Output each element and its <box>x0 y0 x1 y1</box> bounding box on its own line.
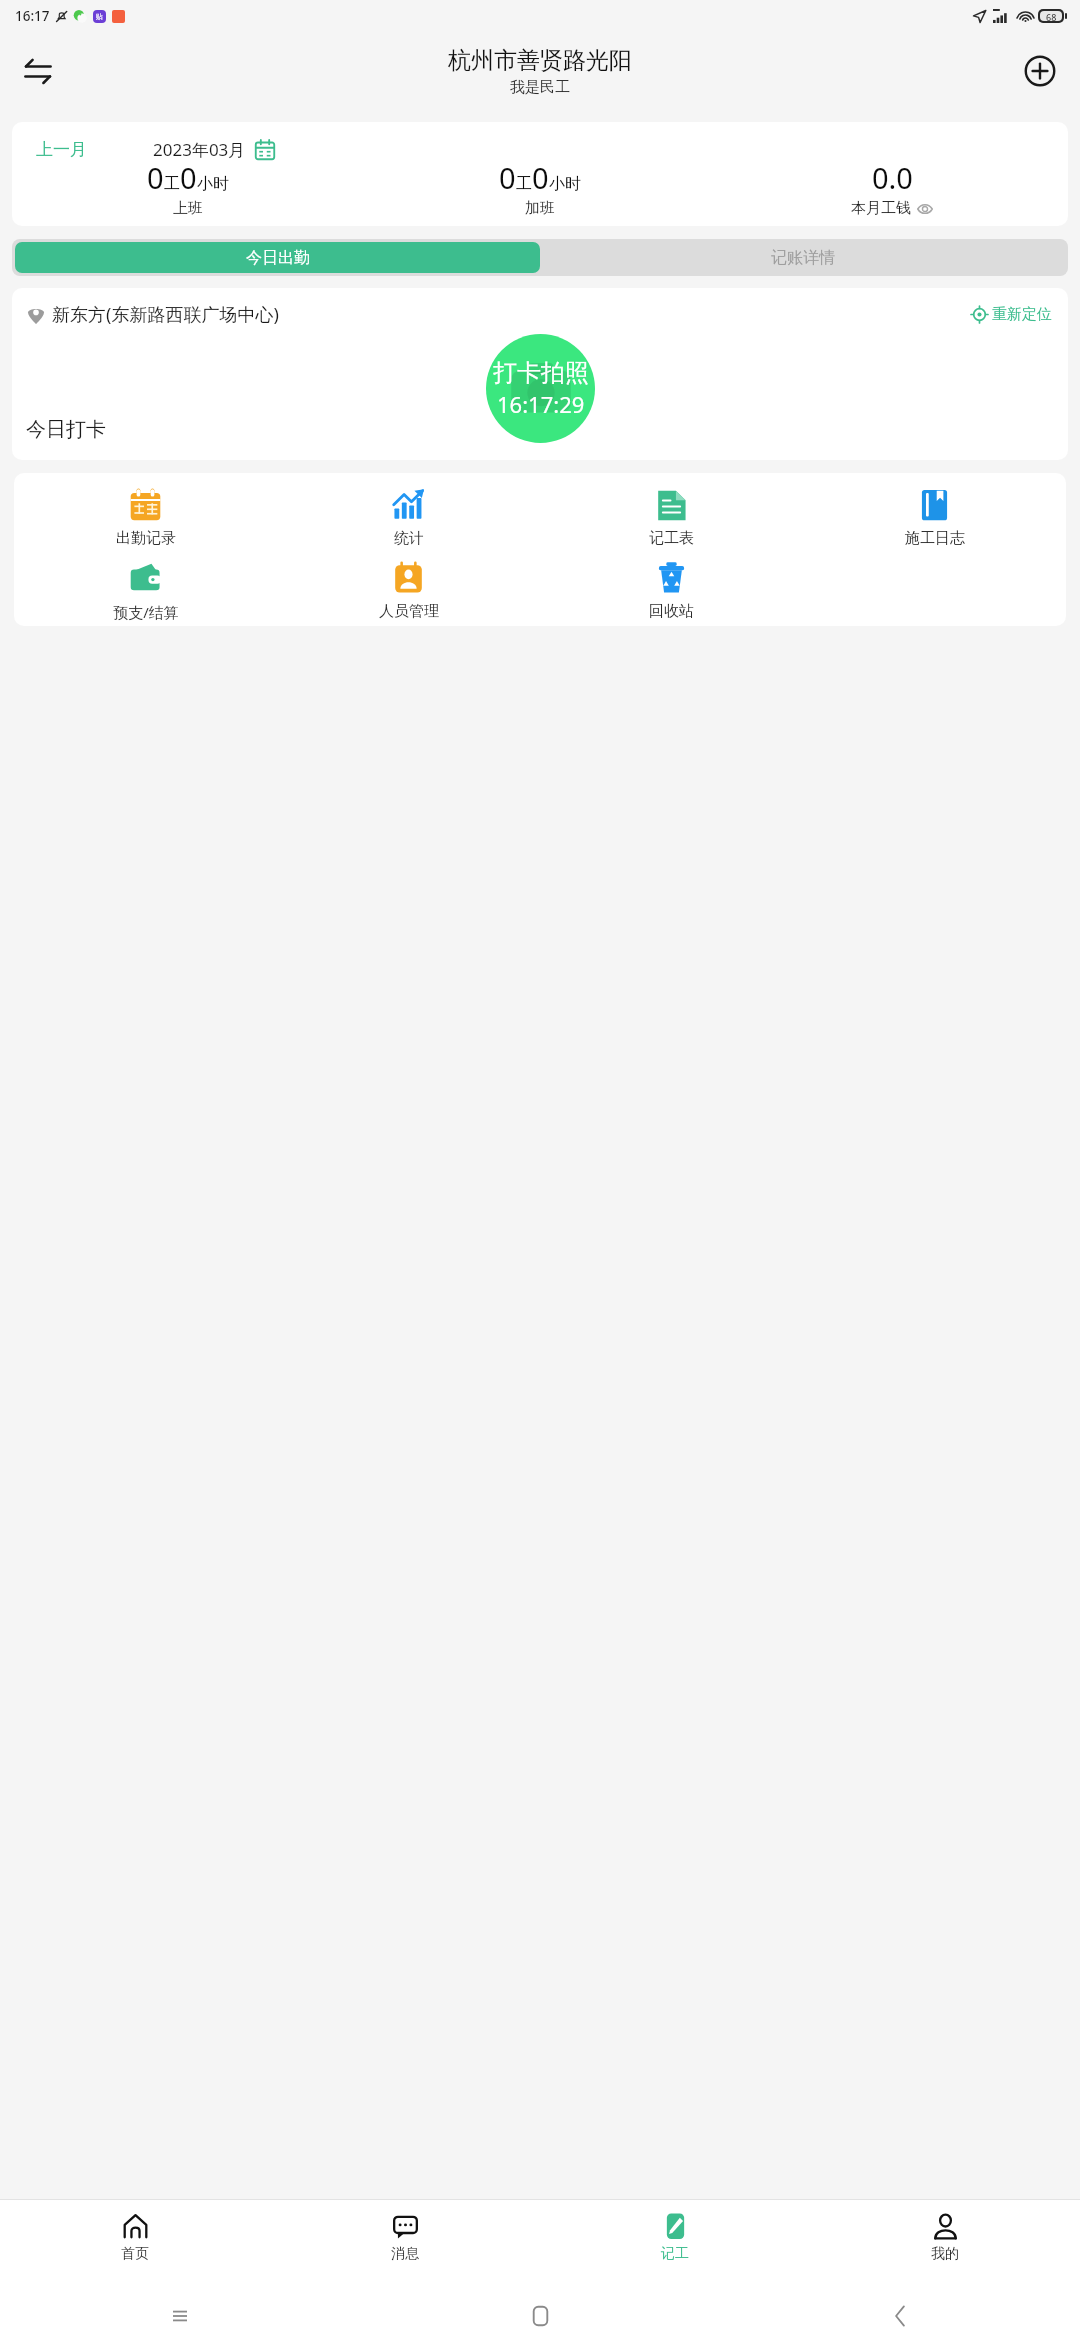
button[interactable]: 我的 <box>810 2200 1080 2292</box>
staticText: 0 <box>499 158 516 197</box>
staticText: 0 <box>180 158 197 197</box>
staticText: 0 <box>147 158 164 197</box>
staticText: 工 <box>516 174 532 194</box>
button[interactable]: 回收站 <box>540 558 803 623</box>
button[interactable]: 预支/结算 <box>14 558 277 624</box>
button[interactable]: 2023年03月 <box>153 136 276 163</box>
staticText: 我的 <box>931 2245 959 2263</box>
button[interactable]: Switch project <box>10 43 66 99</box>
staticText: 施工日志 <box>905 529 965 548</box>
staticText: 首页 <box>121 2245 149 2263</box>
button[interactable]: 首页 <box>0 2200 270 2292</box>
staticText: 重新定位 <box>992 305 1052 324</box>
button[interactable]: Add <box>1012 43 1068 99</box>
staticText: 新东方(东新路西联广场中心) <box>52 302 279 327</box>
button[interactable]: 消息 <box>270 2200 540 2292</box>
staticText: 小时 <box>549 174 581 194</box>
staticText: 回收站 <box>649 602 694 621</box>
button[interactable]: 重新定位 <box>969 303 1054 326</box>
staticText: 2023年03月 <box>153 138 246 161</box>
button[interactable]: 今日出勤 <box>15 242 540 273</box>
button[interactable]: 人员管理 <box>277 558 540 623</box>
staticText: 打卡拍照 <box>493 358 589 388</box>
staticText: 小时 <box>197 174 229 194</box>
button[interactable]: 本月工钱 <box>851 199 933 218</box>
staticText: 今日打卡 <box>26 417 106 442</box>
staticText: 0.0 <box>872 158 913 197</box>
staticText: 记账详情 <box>771 248 835 268</box>
button[interactable]: 记账详情 <box>540 242 1065 273</box>
staticText: 统计 <box>394 529 424 548</box>
staticText: 16:17:29 <box>497 389 585 419</box>
staticText: 贴 <box>96 12 103 21</box>
staticText: 加班 <box>525 199 555 218</box>
staticText: 记工表 <box>649 529 694 548</box>
staticText: 0 <box>532 158 549 197</box>
staticText: 我是民工 <box>510 78 570 97</box>
staticText: 68 <box>1046 11 1057 21</box>
button[interactable]: 施工日志 <box>803 485 1066 550</box>
staticText: 人员管理 <box>379 602 439 621</box>
button[interactable]: 出勤记录 <box>14 485 277 550</box>
staticText: 预支/结算 <box>113 602 179 622</box>
button[interactable]: 打卡拍照 <box>486 334 595 443</box>
staticText: 出勤记录 <box>116 529 176 548</box>
staticText: 消息 <box>391 2245 419 2263</box>
button[interactable]: 记工表 <box>540 485 803 550</box>
button[interactable]: 上一月 <box>32 137 91 162</box>
button[interactable]: 记工 <box>540 2200 810 2292</box>
button[interactable]: 统计 <box>277 485 540 550</box>
staticText: 杭州市善贤路光阳 <box>448 46 632 75</box>
staticText: 16:17 <box>15 7 50 25</box>
staticText: 上班 <box>173 199 203 218</box>
staticText: 今日出勤 <box>246 248 310 268</box>
staticText: 本月工钱 <box>851 199 911 218</box>
staticText: 记工 <box>661 2245 689 2263</box>
staticText: 工 <box>164 174 180 194</box>
staticText: 上一月 <box>36 139 87 160</box>
